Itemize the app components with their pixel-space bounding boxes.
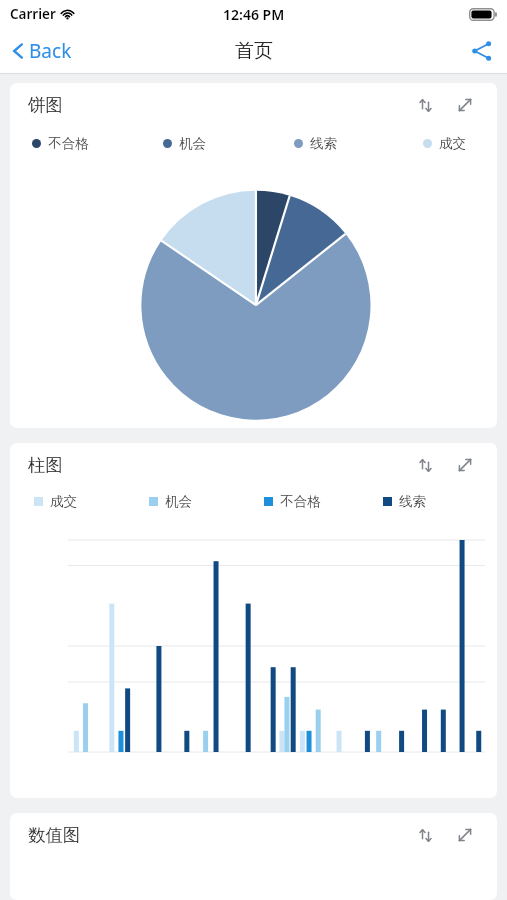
staticText: 柱图: [28, 454, 63, 476]
staticText: 机会: [165, 493, 192, 510]
staticText: 成交: [439, 135, 466, 152]
button[interactable]: Expand: [451, 451, 479, 479]
staticText: 12:46 PM: [223, 5, 285, 24]
button[interactable]: Sort: [412, 92, 439, 119]
staticText: 线索: [399, 493, 426, 510]
staticText: 线索: [310, 135, 337, 152]
button[interactable]: Sort: [412, 452, 439, 479]
staticText: 成交: [50, 493, 77, 510]
staticText: 数值图: [28, 824, 81, 846]
staticText: Back: [29, 38, 72, 64]
staticText: 首页: [235, 39, 273, 63]
button[interactable]: Back: [0, 32, 84, 70]
button[interactable]: Expand: [451, 91, 479, 119]
button[interactable]: Share: [457, 32, 507, 70]
staticText: 机会: [179, 135, 206, 152]
button[interactable]: Expand: [451, 821, 479, 849]
staticText: 饼图: [28, 94, 63, 116]
staticText: Carrier: [10, 5, 56, 23]
staticText: 不合格: [48, 135, 89, 152]
button[interactable]: Sort: [412, 822, 439, 849]
staticText: 不合格: [280, 493, 321, 510]
